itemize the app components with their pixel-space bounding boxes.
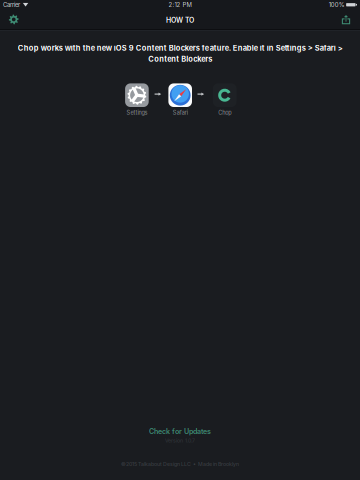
staticText: 2:12 PM — [168, 1, 191, 8]
staticText: HOW TO — [166, 16, 194, 24]
staticText: Chop — [218, 109, 231, 116]
staticText: Safari — [173, 109, 188, 116]
button[interactable]: Check for Updates — [149, 427, 211, 436]
staticText: Carrier — [3, 1, 20, 8]
staticText: ©2015 Talkabout Design LLC • Made in Bro… — [121, 461, 239, 467]
staticText: Check for Updates — [149, 427, 211, 436]
staticText: Version 1.0.7 — [165, 437, 195, 444]
staticText: Settings — [126, 109, 147, 116]
button[interactable]: Share — [335, 9, 357, 29]
staticText: Chop works with the new iOS 9 Content Bl… — [17, 43, 342, 63]
staticText: 100% — [329, 1, 345, 8]
button[interactable]: Settings — [3, 9, 24, 29]
